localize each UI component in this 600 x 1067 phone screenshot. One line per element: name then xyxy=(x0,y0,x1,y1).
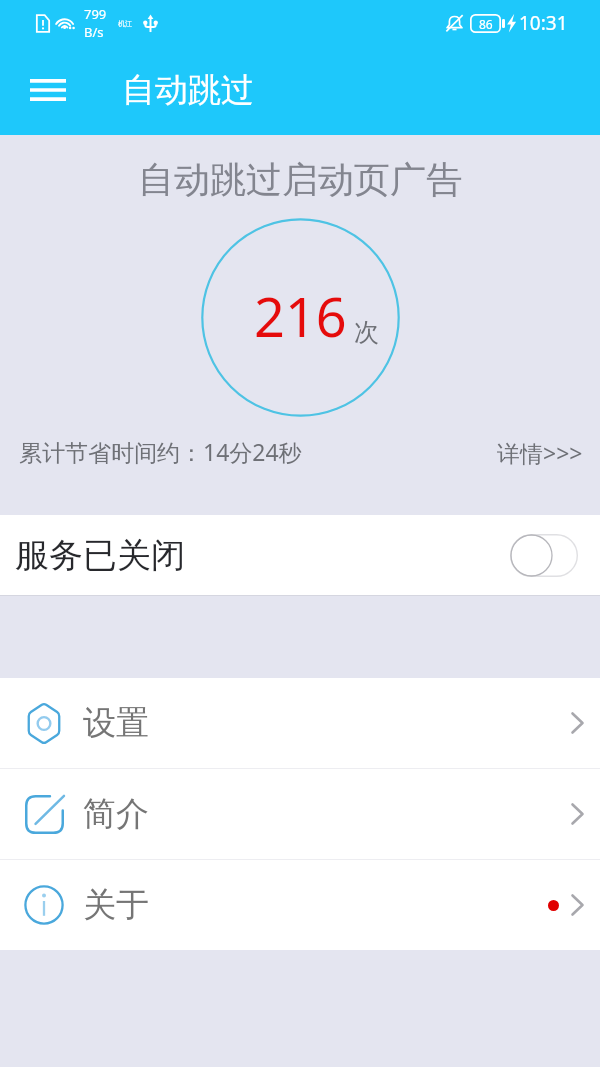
button[interactable]: 服务已关闭 xyxy=(0,515,600,595)
staticText: 服务已关闭 xyxy=(15,534,185,577)
staticText: 累计节省时间约：14分24秒 xyxy=(19,436,302,467)
button[interactable]: Toggle service xyxy=(510,534,578,577)
staticText: 机江 xyxy=(118,19,132,28)
staticText: 简介 xyxy=(83,793,149,835)
button[interactable]: 详情>>> xyxy=(491,429,589,476)
staticText: 关于 xyxy=(83,884,149,926)
staticText: 次 xyxy=(354,317,379,348)
staticText: 86 xyxy=(479,16,493,32)
staticText: 216 xyxy=(254,279,347,353)
staticText: 设置 xyxy=(83,702,149,744)
staticText: B/s xyxy=(84,23,104,41)
staticText: 详情>>> xyxy=(497,437,583,468)
staticText: 10:31 xyxy=(519,10,568,36)
staticText: 自动跳过 xyxy=(122,69,254,111)
button[interactable]: 关于 xyxy=(0,860,600,950)
button[interactable]: 设置 xyxy=(0,678,600,768)
staticText: 自动跳过启动页广告 xyxy=(138,157,462,202)
button[interactable]: Menu xyxy=(14,56,82,124)
button[interactable]: 简介 xyxy=(0,769,600,859)
staticText: 799 xyxy=(84,5,107,23)
